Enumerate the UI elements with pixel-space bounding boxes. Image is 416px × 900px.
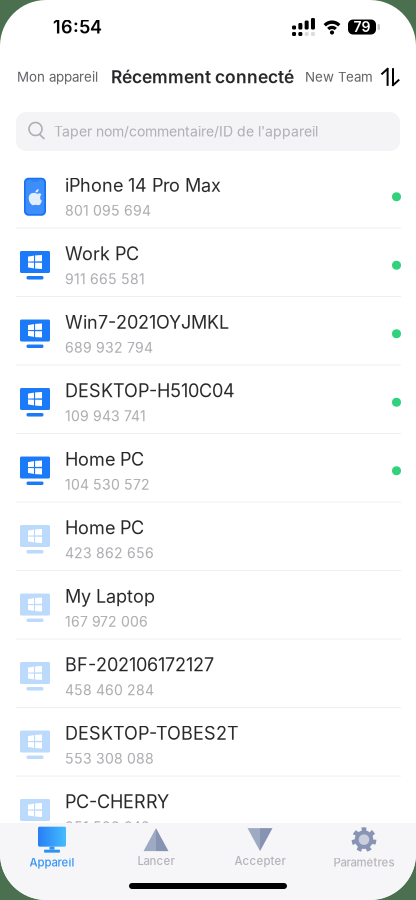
staticText: Work PC xyxy=(65,243,139,265)
staticText: Home PC xyxy=(65,517,144,539)
staticText: Paramètres xyxy=(333,856,394,869)
staticText: PC-CHERRY xyxy=(65,791,169,813)
staticText: 851 523 242 xyxy=(65,819,150,836)
staticText: 109 943 741 xyxy=(65,408,146,425)
button[interactable]: DESKTOP-TOBES2T xyxy=(0,708,416,776)
button[interactable]: My Laptop xyxy=(0,571,416,639)
button[interactable]: New Team xyxy=(294,61,373,93)
staticText: 16:54 xyxy=(53,16,102,38)
button[interactable]: iPhone 14 Pro Max xyxy=(0,160,416,228)
button[interactable]: Taper nom/commentaire/ID de l'appareil xyxy=(16,112,400,151)
staticText: iPhone 14 Pro Max xyxy=(65,174,221,196)
staticText: 79 xyxy=(353,18,370,35)
button[interactable]: PC-CHERRY xyxy=(0,776,416,845)
staticText: Récemment connecté xyxy=(111,66,294,87)
button[interactable]: Home PC xyxy=(0,502,416,571)
button[interactable]: Paramètres xyxy=(312,823,416,869)
staticText: 553 308 088 xyxy=(65,750,154,767)
staticText: Taper nom/commentaire/ID de l'appareil xyxy=(54,123,318,140)
staticText: 689 932 794 xyxy=(65,339,153,356)
button[interactable]: Appareil xyxy=(0,823,104,869)
staticText: Win7-2021OYJMKL xyxy=(65,311,229,333)
staticText: Mon appareil xyxy=(17,69,98,85)
staticText: My Laptop xyxy=(65,585,155,607)
button[interactable]: Home PC xyxy=(0,434,416,502)
button[interactable]: DESKTOP-H510C04 xyxy=(0,365,416,434)
staticText: BF-202106172127 xyxy=(65,654,214,676)
staticText: 423 862 656 xyxy=(65,545,154,562)
staticText: Lancer xyxy=(137,854,174,868)
staticText: Accepter xyxy=(234,854,285,868)
button[interactable]: Work PC xyxy=(0,228,416,297)
staticText: 458 460 284 xyxy=(65,682,154,699)
button[interactable]: Win7-2021OYJMKL xyxy=(0,297,416,365)
staticText: DESKTOP-H510C04 xyxy=(65,380,235,402)
button[interactable]: Mon appareil xyxy=(0,61,98,93)
staticText: New Team xyxy=(305,69,373,85)
staticText: 801 095 694 xyxy=(65,202,151,219)
staticText: DESKTOP-TOBES2T xyxy=(65,722,239,744)
staticText: 167 972 006 xyxy=(65,613,148,630)
button[interactable]: Sort xyxy=(375,63,416,90)
button[interactable]: Lancer xyxy=(104,823,208,869)
staticText: 104 530 572 xyxy=(65,476,150,493)
staticText: Appareil xyxy=(29,856,74,869)
staticText: Home PC xyxy=(65,448,144,470)
button[interactable]: Accepter xyxy=(208,823,312,869)
button[interactable]: Récemment connecté xyxy=(98,58,294,95)
staticText: 911 665 581 xyxy=(65,271,145,288)
button[interactable]: BF-202106172127 xyxy=(0,639,416,708)
